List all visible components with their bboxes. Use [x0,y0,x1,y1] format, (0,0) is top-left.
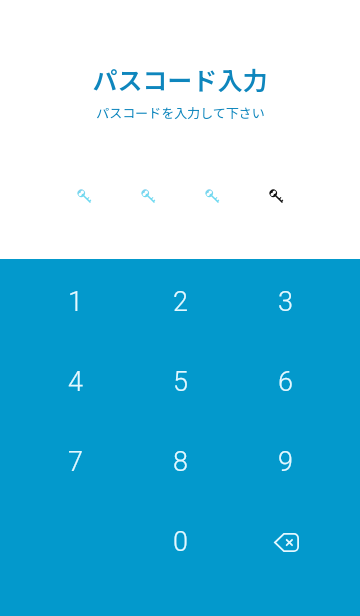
button[interactable]: 6 [233,342,338,422]
staticText: 2 [173,286,188,318]
button[interactable]: 7 [23,422,128,502]
staticText: 6 [278,366,293,398]
staticText: 1 [68,286,83,318]
staticText: 8 [173,446,188,478]
staticText: 4 [68,366,83,398]
staticText: 9 [278,446,293,478]
staticText: 0 [173,526,188,558]
button[interactable]: 9 [233,422,338,502]
button[interactable]: 2 [128,262,233,342]
button[interactable]: 1 [23,262,128,342]
button[interactable]: 3 [233,262,338,342]
button[interactable]: 4 [23,342,128,422]
staticText: 7 [68,446,83,478]
button[interactable]: 8 [128,422,233,502]
button[interactable]: Backspace [233,502,338,582]
staticText: 5 [173,366,188,398]
other: Backspace [274,533,299,552]
staticText: 3 [278,286,293,318]
staticText: パスコード入力 [92,61,268,97]
staticText: パスコードを入力して下さい [96,103,265,122]
button[interactable]: 0 [128,502,233,582]
button[interactable]: 5 [128,342,233,422]
